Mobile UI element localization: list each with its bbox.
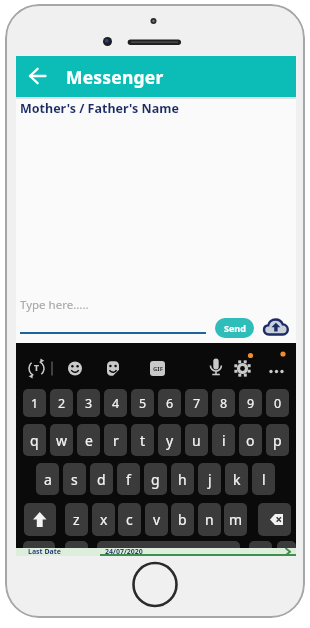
button[interactable]: k (225, 463, 248, 495)
button[interactable]: x (92, 503, 115, 536)
staticText: w (56, 431, 68, 450)
button[interactable] (249, 541, 272, 553)
staticText: c (126, 510, 133, 529)
staticText: n (205, 510, 214, 529)
staticText: T (34, 362, 39, 374)
staticText: t (140, 431, 146, 450)
staticText: g (151, 470, 160, 489)
staticText: j (208, 470, 212, 489)
staticText: k (233, 470, 241, 489)
button[interactable]: t (131, 424, 154, 456)
button[interactable]: e (77, 424, 100, 456)
staticText: h (178, 470, 187, 489)
button[interactable]: 7 (185, 389, 208, 417)
button[interactable]: o (239, 424, 262, 456)
staticText: p (273, 431, 282, 450)
staticText: f (126, 470, 131, 489)
button[interactable] (20, 293, 206, 335)
button[interactable]: w (50, 424, 73, 456)
staticText: 2 (58, 395, 66, 412)
staticText: 7 (193, 395, 201, 412)
staticText: Send (224, 322, 246, 334)
button[interactable] (25, 355, 49, 379)
staticText: Last Date (28, 548, 62, 555)
staticText: 6 (166, 395, 174, 412)
staticText: GIF (153, 365, 163, 373)
staticText: Messenger (66, 65, 164, 89)
button[interactable]: c (118, 503, 141, 536)
button[interactable]: 1 (23, 389, 46, 417)
staticText: x (100, 510, 108, 529)
button[interactable]: y (158, 424, 181, 456)
button[interactable]: 2 (50, 389, 73, 417)
staticText: e (85, 431, 93, 450)
staticText: 0 (274, 395, 282, 412)
button[interactable]: Send (215, 318, 254, 338)
button[interactable]: 8 (212, 389, 235, 417)
button[interactable] (230, 355, 254, 379)
button[interactable]: 3 (77, 389, 100, 417)
staticText: d (97, 470, 106, 489)
button[interactable]: q (23, 424, 46, 456)
staticText: l (262, 470, 266, 489)
button[interactable]: 5 (131, 389, 154, 417)
button[interactable]: s (63, 463, 86, 495)
button[interactable]: r (104, 424, 127, 456)
button[interactable] (97, 541, 240, 553)
button[interactable]: a (36, 463, 59, 495)
staticText: 4 (112, 395, 120, 412)
button[interactable]: f (117, 463, 140, 495)
button[interactable]: b (171, 503, 194, 536)
staticText: 8 (220, 395, 228, 412)
button[interactable]: n (198, 503, 221, 536)
staticText: Mother's / Father's Name (20, 100, 179, 117)
staticText: 5 (139, 395, 147, 412)
staticText: o (246, 431, 255, 450)
staticText: s (71, 470, 78, 489)
button[interactable] (264, 355, 288, 379)
staticText: z (73, 510, 80, 529)
staticText: Type here..... (20, 297, 89, 313)
staticText: y (166, 431, 174, 450)
button[interactable]: u (185, 424, 208, 456)
button[interactable]: p (266, 424, 289, 456)
button[interactable]: m (224, 503, 247, 536)
staticText: 1 (31, 395, 39, 412)
button[interactable] (65, 541, 88, 553)
button[interactable] (63, 355, 87, 379)
button[interactable] (23, 541, 55, 553)
staticText: i (222, 431, 226, 450)
staticText: 9 (247, 395, 255, 412)
button[interactable] (29, 68, 47, 84)
staticText: 24/07/2020 (105, 548, 143, 555)
staticText: a (44, 470, 52, 489)
staticText: b (178, 510, 187, 529)
button[interactable] (262, 313, 292, 339)
button[interactable]: g (144, 463, 167, 495)
staticText: u (192, 431, 201, 450)
button[interactable]: l (252, 463, 275, 495)
staticText: m (229, 510, 243, 529)
button[interactable]: d (90, 463, 113, 495)
button[interactable]: 6 (158, 389, 181, 417)
button[interactable]: v (145, 503, 168, 536)
button[interactable]: h (171, 463, 194, 495)
staticText: q (30, 431, 39, 450)
button[interactable]: Last Date (16, 548, 296, 556)
staticText: r (113, 431, 119, 450)
button[interactable]: 0 (266, 389, 289, 417)
staticText: 3 (85, 395, 93, 412)
staticText: v (153, 510, 161, 529)
button[interactable] (101, 355, 125, 379)
button[interactable] (24, 503, 56, 536)
button[interactable] (204, 355, 228, 379)
button[interactable]: z (65, 503, 88, 536)
button[interactable]: j (198, 463, 221, 495)
button[interactable] (258, 503, 291, 536)
button[interactable]: GIF (150, 361, 165, 376)
button[interactable]: i (212, 424, 235, 456)
button[interactable]: 4 (104, 389, 127, 417)
button[interactable]: 9 (239, 389, 262, 417)
button[interactable] (277, 541, 296, 553)
